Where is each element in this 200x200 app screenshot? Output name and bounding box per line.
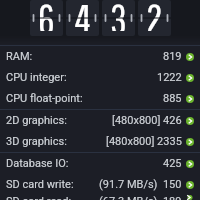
staticText: 819 (163, 50, 182, 63)
staticText: [480x800] 426 (112, 114, 182, 127)
staticText: Database IO: (6, 157, 69, 170)
button[interactable]: CPU float-point: (0, 88, 200, 109)
button[interactable]: RAM: (0, 46, 200, 67)
button[interactable]: CPU integer: (0, 67, 200, 88)
staticText: 425 (163, 157, 182, 170)
staticText: 6 (38, 0, 55, 31)
button[interactable]: Database IO: (0, 153, 200, 174)
staticText: 3D graphics: (6, 135, 67, 148)
staticText: (91.7 MB/s) 150 (99, 178, 182, 191)
button[interactable]: 2D graphics: (0, 110, 200, 131)
staticText: CPU float-point: (6, 92, 83, 105)
staticText: CPU integer: (6, 71, 67, 84)
staticText: 885 (163, 92, 182, 105)
staticText: (67.3 MB/s) 189 (99, 195, 182, 200)
button[interactable]: 3D graphics: (0, 131, 200, 152)
staticText: SD card write: (6, 178, 74, 191)
staticText: RAM: (6, 50, 33, 63)
staticText: 2D graphics: (6, 114, 67, 127)
staticText: SD card read: (6, 195, 72, 200)
staticText: 3 (110, 0, 127, 31)
button[interactable]: SD card read: (0, 195, 200, 200)
staticText: 2 (146, 0, 163, 31)
staticText: 4 (75, 0, 91, 31)
staticText: 1222 (157, 71, 182, 84)
button[interactable]: SD card write: (0, 174, 200, 195)
staticText: [480x800] 2335 (106, 135, 182, 148)
